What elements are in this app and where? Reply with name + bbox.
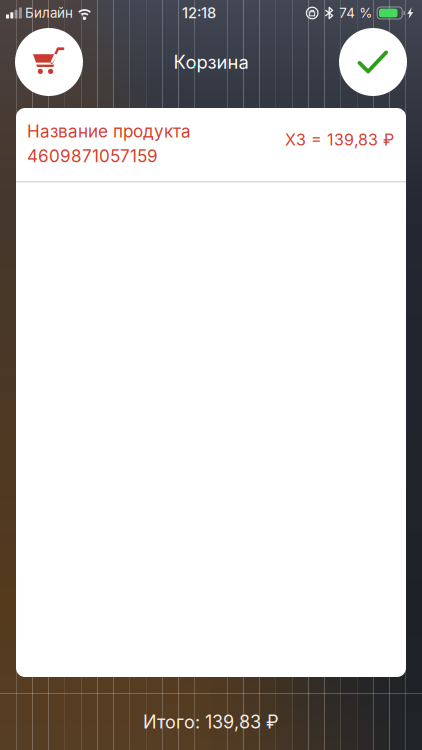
- staticText: Итого: 139,83 ₽: [143, 711, 279, 733]
- staticText: Название продукта: [27, 121, 191, 142]
- staticText: X3 = 139,83 ₽: [285, 130, 394, 149]
- staticText: Билайн: [25, 5, 73, 21]
- staticText: 4609871057159: [27, 146, 158, 166]
- staticText: Корзина: [173, 51, 248, 73]
- staticText: 12:18: [182, 4, 216, 22]
- staticText: 74 %: [339, 5, 372, 21]
- button[interactable]: Корзина: [15, 28, 83, 96]
- button[interactable]: Название продукта: [16, 108, 406, 181]
- button[interactable]: Готово: [339, 28, 407, 96]
